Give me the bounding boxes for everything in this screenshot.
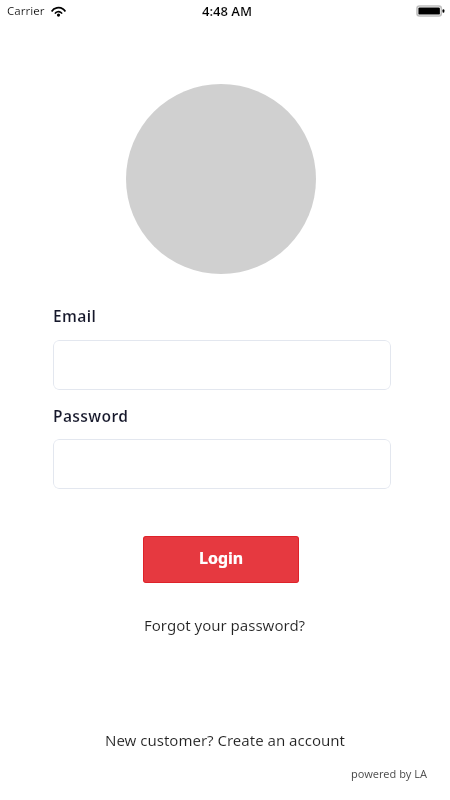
staticText: Login	[199, 547, 244, 569]
staticText: Email	[53, 305, 97, 326]
button[interactable]: Login	[143, 536, 299, 583]
staticText: powered by LA	[351, 766, 428, 781]
staticText: Forgot your password?	[144, 615, 306, 635]
staticText: Password	[53, 405, 129, 426]
staticText: New customer? Create an account	[105, 730, 345, 750]
staticText: 4:48 AM	[202, 2, 253, 20]
button[interactable]: New customer? Create an account	[95, 725, 355, 755]
staticText: Carrier	[7, 3, 45, 19]
button[interactable]: Text field	[53, 439, 391, 489]
button[interactable]: Forgot your password?	[134, 610, 316, 640]
button[interactable]: Text field	[53, 340, 391, 390]
